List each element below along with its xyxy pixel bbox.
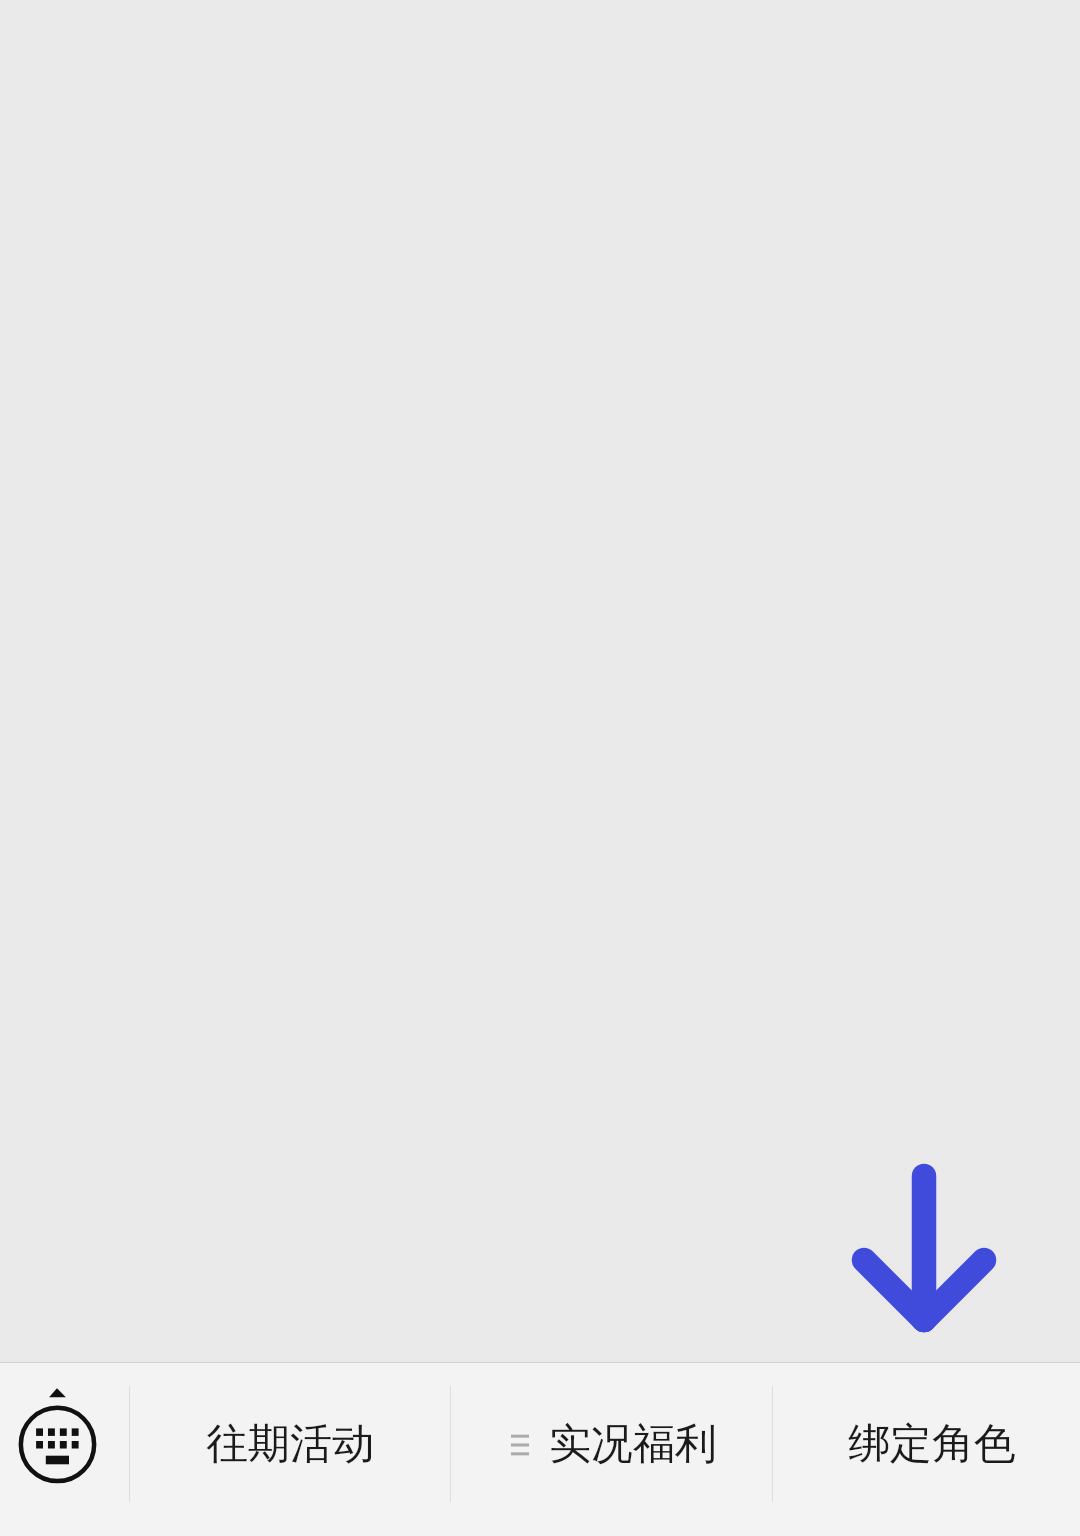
button[interactable]: 往期活动: [129, 1362, 450, 1536]
staticText: 往期活动: [206, 1418, 374, 1471]
button[interactable]: 实况福利: [453, 1362, 774, 1536]
staticText: 实况福利: [549, 1418, 717, 1471]
button[interactable]: Show keyboard: [0, 1362, 129, 1536]
other: Scroll down: [840, 1152, 1010, 1342]
button[interactable]: 绑定角色: [771, 1362, 1080, 1536]
staticText: 绑定角色: [848, 1418, 1016, 1471]
